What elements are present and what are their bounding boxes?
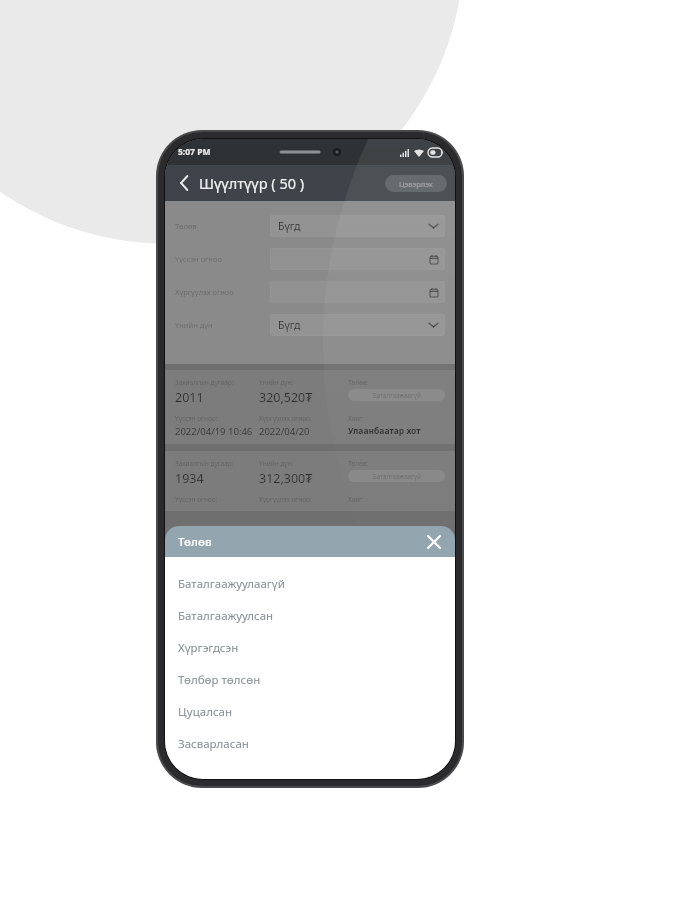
staticText: Хүргүүлэх огноо: [259,414,312,423]
staticText: Бүгд [278,318,301,332]
button[interactable]: Баталгаажуулсан [165,600,455,632]
button[interactable]: Хүргэгдсэн [165,632,455,664]
button[interactable] [270,248,445,270]
button[interactable]: Цэвэрлэх [385,175,447,192]
staticText: Төлөв: [348,459,369,468]
button[interactable]: Back [174,173,194,193]
button[interactable] [270,281,445,303]
staticText: Төлөв: [348,378,369,387]
staticText: Цэвэрлэх [399,179,433,189]
button[interactable]: Бүгд [270,215,445,237]
staticText: Баталгаажаагүй [373,391,421,399]
staticText: Шүүлтүүр ( 50 ) [199,173,305,193]
button[interactable]: Баталгаажуулаагүй [165,568,455,600]
staticText: Үүссэн огноо: [175,414,218,423]
staticText: Төлөв [175,221,197,231]
staticText: 5:07 PM [178,146,211,158]
staticText: Баталгаажуулаагүй [178,576,285,592]
staticText: Үүссэн огноо: [175,495,218,503]
staticText: 1934 [175,470,204,487]
staticText: 320,520₮ [259,389,313,406]
button[interactable]: Бүгд [270,314,445,336]
staticText: Үнийн дүн [175,320,213,330]
staticText: Хүргэгдсэн [178,640,239,656]
staticText: Улаанбаатар хот [348,425,421,436]
staticText: Үнийн дүн: [259,459,294,468]
staticText: Хаяг: [348,495,364,503]
staticText: Бүгд [278,219,301,233]
staticText: 2022/04/20 [259,425,310,436]
staticText: Баталгаажаагүй [373,472,421,480]
staticText: 2022/04/19 10:46 [175,425,253,436]
staticText: Засварласан [178,736,249,752]
staticText: Захиалгын дугаар: [175,459,234,468]
staticText: Баталгаажуулсан [178,608,274,624]
button[interactable]: Төлбөр төлсөн [165,664,455,696]
staticText: Цуцалсан [178,704,233,720]
staticText: 2011 [175,389,204,406]
staticText: Үнийн дүн: [259,378,294,387]
staticText: Хүргүүлэх огноо: [259,495,312,503]
button[interactable]: Захиалгын дугаар: [165,451,455,511]
staticText: Төлбөр төлсөн [178,672,261,688]
staticText: 312,300₮ [259,470,313,487]
staticText: Хаяг: [348,414,364,423]
staticText: Хүргүүлэх огноо [175,287,234,297]
button[interactable]: Close [423,531,445,553]
staticText: Үүссэн огноо [175,254,222,264]
staticText: Төлөв [178,534,212,550]
button[interactable]: Засварласан [165,728,455,760]
button[interactable]: Цуцалсан [165,696,455,728]
button[interactable]: Захиалгын дугаар: [165,370,455,444]
staticText: Захиалгын дугаар: [175,378,234,387]
